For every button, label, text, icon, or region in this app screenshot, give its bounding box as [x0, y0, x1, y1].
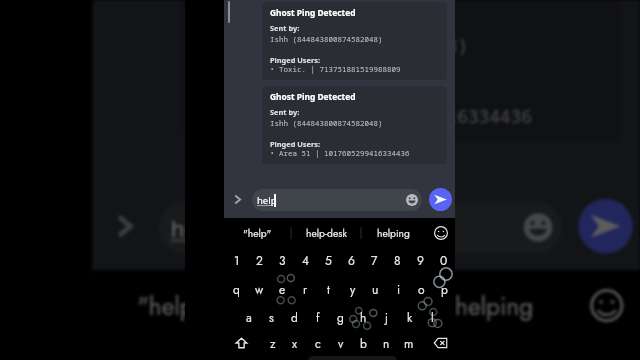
button[interactable]: c [306, 330, 329, 356]
staticText: 7 [371, 252, 378, 269]
staticText: 9 [417, 252, 424, 269]
button[interactable]: p [433, 276, 456, 302]
button[interactable]: h [352, 304, 375, 330]
button[interactable]: help [159, 201, 562, 253]
button[interactable]: Ghost Ping Detected [262, 2, 447, 80]
button[interactable]: 3 [271, 247, 294, 273]
staticText: 3 [279, 252, 286, 269]
button[interactable]: 2 [248, 247, 271, 273]
staticText: 2 [256, 252, 263, 269]
staticText: d [291, 309, 298, 326]
button[interactable]: q [225, 276, 248, 302]
button[interactable]: m [397, 330, 420, 356]
button[interactable]: 7 [363, 247, 386, 273]
button[interactable]: help [252, 189, 422, 211]
button[interactable]: Open emoji keyboard [431, 223, 451, 243]
button[interactable]: 7 [422, 339, 476, 360]
staticText: help-desk [306, 226, 347, 241]
button[interactable]: Shift [227, 330, 255, 356]
button[interactable]: k [398, 304, 421, 330]
staticText: Sent by: [270, 23, 300, 33]
button[interactable]: j [375, 304, 398, 330]
button[interactable]: Send [578, 199, 633, 253]
staticText: Sent by: [201, 7, 273, 31]
button[interactable]: w [248, 276, 271, 302]
button[interactable]: 5 [313, 339, 367, 360]
button[interactable]: d [283, 304, 306, 330]
button[interactable]: e [271, 276, 294, 302]
button[interactable]: Open app actions [227, 189, 247, 209]
button[interactable]: r [294, 276, 317, 302]
staticText: q [233, 281, 240, 298]
button[interactable]: g [329, 304, 352, 330]
button[interactable]: l [421, 304, 444, 330]
button[interactable]: "help" [224, 220, 291, 246]
button[interactable]: 6 [340, 247, 363, 273]
button[interactable]: s [260, 304, 283, 330]
staticText: t [327, 281, 330, 298]
staticText: helping [377, 226, 410, 241]
staticText: n [383, 335, 390, 352]
button[interactable]: 6 [367, 339, 422, 360]
staticText: m [404, 335, 414, 352]
button[interactable]: f [306, 304, 329, 330]
button[interactable]: z [261, 330, 284, 356]
button[interactable]: Ghost Ping Detected [182, 0, 621, 142]
button[interactable]: 1 [225, 247, 248, 273]
button[interactable]: helping [360, 220, 427, 246]
staticText: Sent by: [270, 107, 300, 117]
button[interactable]: Emoji [524, 213, 552, 242]
button[interactable]: n [375, 330, 398, 356]
button[interactable]: Send [429, 188, 452, 211]
button[interactable]: t [317, 276, 340, 302]
button[interactable]: x [283, 330, 306, 356]
staticText: 6 [386, 351, 403, 360]
staticText: • Toxic. | 713751881519988809 [270, 64, 401, 74]
button[interactable]: u [364, 276, 387, 302]
button[interactable]: help-desk [256, 275, 415, 336]
button[interactable]: Ghost Ping Detected [262, 86, 447, 164]
button[interactable]: Space [308, 356, 397, 360]
button[interactable]: a [237, 304, 260, 330]
staticText: c [315, 335, 321, 352]
button[interactable]: 0 [432, 247, 455, 273]
staticText: w [255, 281, 264, 298]
staticText: e [279, 281, 286, 298]
staticText: • Area 51 | 1017605299416334436 [201, 104, 533, 128]
staticText: 4 [302, 252, 309, 269]
button[interactable]: 9 [409, 247, 432, 273]
staticText: b [360, 335, 367, 352]
staticText: Ishh (844843800874582048) [201, 33, 469, 57]
button[interactable]: 4 [258, 339, 313, 360]
button[interactable]: help-desk [293, 220, 360, 246]
button[interactable]: 5 [317, 247, 340, 273]
button[interactable]: i [387, 276, 410, 302]
button[interactable]: helping [415, 275, 574, 336]
staticText: help [257, 194, 277, 207]
button[interactable]: Backspace [426, 330, 454, 356]
staticText: r [303, 281, 308, 298]
staticText: "help" [243, 226, 272, 241]
staticText: help-desk [287, 289, 384, 324]
button[interactable]: y [341, 276, 364, 302]
button[interactable]: Open app actions [100, 201, 147, 249]
button[interactable]: 3 [204, 339, 258, 360]
button[interactable]: Open emoji keyboard [583, 282, 630, 329]
button[interactable]: v [329, 330, 352, 356]
staticText: s [269, 309, 274, 326]
button[interactable]: o [410, 276, 433, 302]
button[interactable]: "help" [92, 275, 251, 336]
staticText: v [338, 335, 344, 352]
staticText: helping [455, 289, 533, 324]
button[interactable]: b [352, 330, 375, 356]
button[interactable]: 4 [294, 247, 317, 273]
button[interactable]: 8 [386, 247, 409, 273]
button[interactable]: Emoji [406, 194, 418, 206]
